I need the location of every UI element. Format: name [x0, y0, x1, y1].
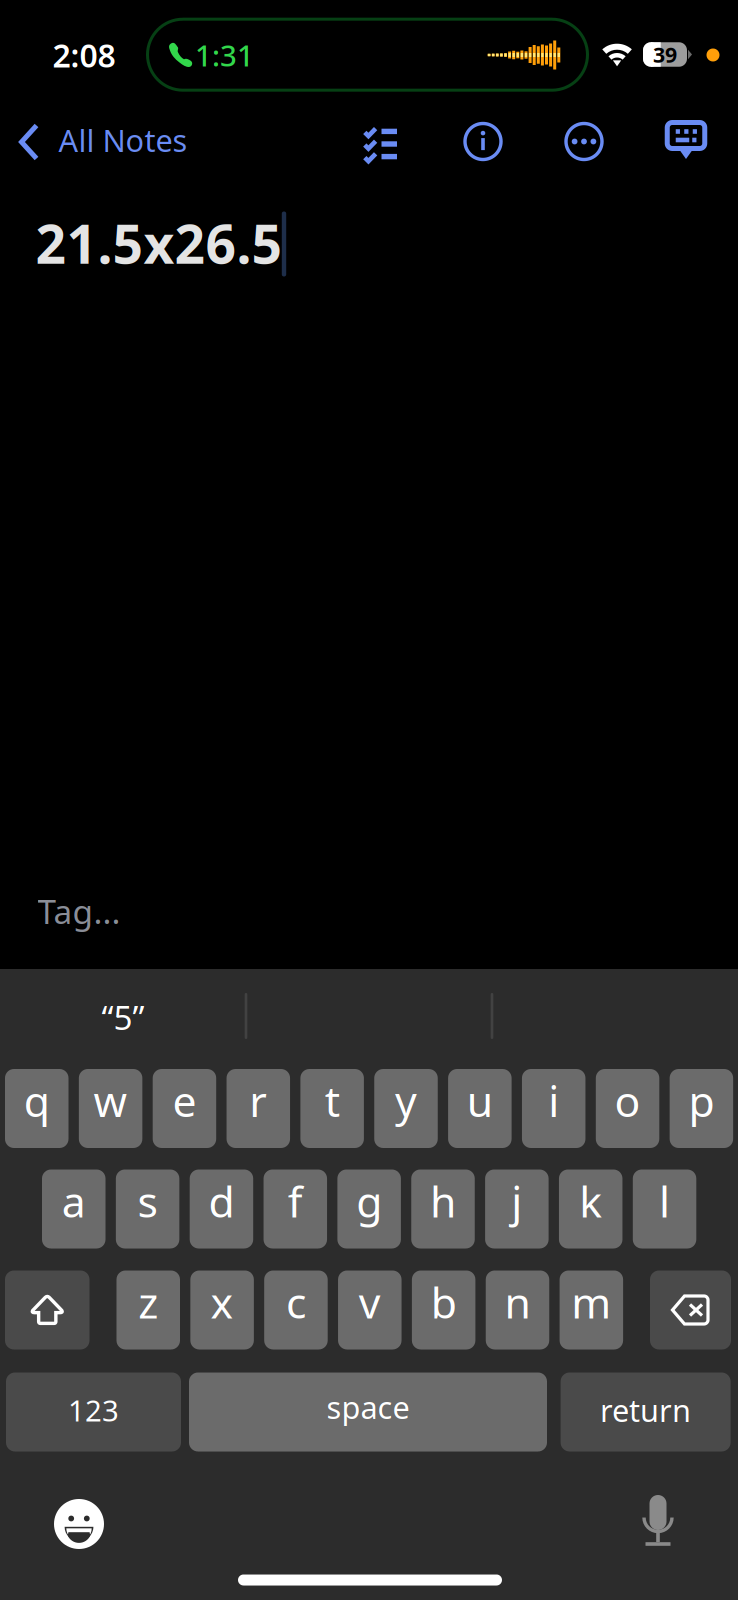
staticText: x — [211, 1274, 234, 1330]
button[interactable]: d — [190, 1169, 253, 1248]
staticText: l — [659, 1173, 670, 1229]
button[interactable]: space — [189, 1372, 547, 1451]
button[interactable]: k — [559, 1169, 622, 1248]
button[interactable]: g — [337, 1169, 401, 1248]
staticText: space — [326, 1387, 409, 1427]
button[interactable]: m — [560, 1270, 623, 1349]
staticText: o — [614, 1072, 640, 1129]
staticText: h — [430, 1173, 456, 1229]
staticText: Tag... — [37, 889, 120, 933]
button[interactable]: w — [79, 1069, 142, 1148]
staticText: 1:31 — [195, 35, 254, 74]
button[interactable]: x — [190, 1270, 254, 1349]
button[interactable]: l — [633, 1169, 696, 1248]
button[interactable]: f — [263, 1169, 327, 1248]
staticText: 39 — [653, 40, 677, 69]
button[interactable]: Shift — [5, 1270, 89, 1349]
staticText: p — [688, 1072, 714, 1129]
button[interactable]: j — [485, 1169, 549, 1248]
button[interactable]: More Options — [546, 104, 622, 178]
button[interactable]: Delete — [650, 1270, 731, 1349]
staticText: f — [288, 1173, 303, 1229]
staticText: d — [208, 1173, 234, 1229]
button[interactable]: All Notes — [2, 105, 203, 179]
staticText: n — [504, 1274, 530, 1330]
button[interactable]: z — [116, 1270, 180, 1349]
button[interactable]: t — [300, 1069, 364, 1148]
button[interactable]: u — [448, 1069, 512, 1148]
staticText: k — [579, 1173, 602, 1229]
staticText: b — [431, 1274, 457, 1330]
staticText: z — [138, 1274, 158, 1330]
staticText: v — [359, 1274, 381, 1330]
button[interactable]: p — [670, 1069, 733, 1148]
button[interactable]: Note Info — [445, 104, 521, 178]
staticText: g — [356, 1173, 382, 1229]
button[interactable]: r — [226, 1069, 290, 1148]
staticText: All Notes — [58, 120, 187, 160]
staticText: u — [467, 1072, 493, 1129]
button[interactable]: Dictation — [618, 1481, 698, 1561]
staticText: 21.5x26.5 — [35, 208, 282, 278]
button[interactable]: q — [5, 1069, 68, 1148]
staticText: a — [62, 1173, 86, 1229]
staticText: s — [138, 1173, 158, 1229]
staticText: y — [395, 1072, 417, 1129]
staticText: “5” — [101, 995, 144, 1039]
button[interactable]: n — [486, 1270, 549, 1349]
staticText: r — [249, 1072, 267, 1129]
staticText: return — [600, 1390, 691, 1430]
button[interactable]: b — [412, 1270, 475, 1349]
button[interactable]: c — [264, 1270, 328, 1349]
staticText: 2:08 — [52, 34, 115, 76]
button[interactable]: h — [411, 1169, 475, 1248]
staticText: m — [571, 1274, 611, 1330]
button[interactable]: Hide Keyboard — [648, 104, 724, 178]
staticText: w — [94, 1072, 128, 1129]
staticText: t — [325, 1072, 340, 1129]
staticText: 123 — [68, 1390, 119, 1429]
staticText: i — [548, 1072, 559, 1129]
button[interactable]: v — [338, 1270, 401, 1349]
button[interactable]: s — [116, 1169, 179, 1248]
staticText: q — [24, 1072, 50, 1129]
staticText: j — [511, 1173, 522, 1229]
staticText: e — [172, 1072, 196, 1129]
button[interactable]: o — [596, 1069, 659, 1148]
button[interactable]: e — [153, 1069, 216, 1148]
button[interactable]: 123 — [6, 1372, 181, 1451]
button[interactable]: Emoji — [39, 1484, 119, 1564]
button[interactable]: Checklist — [343, 104, 419, 178]
button[interactable]: a — [42, 1169, 105, 1248]
button[interactable]: return — [561, 1372, 731, 1451]
button[interactable]: y — [374, 1069, 438, 1148]
button[interactable]: i — [522, 1069, 585, 1148]
staticText: c — [286, 1274, 306, 1330]
